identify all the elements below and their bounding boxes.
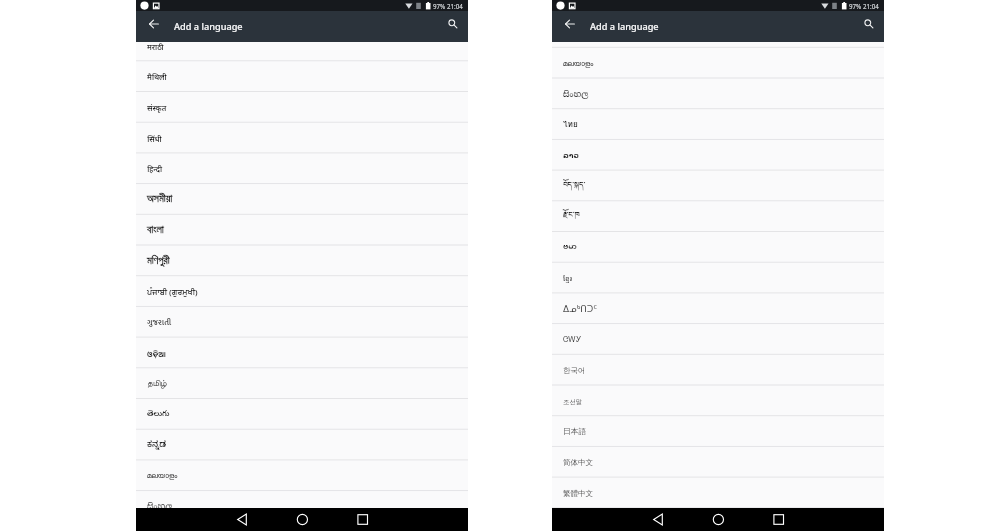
staticText: മലയാളം: [563, 60, 594, 67]
button[interactable]: ខ្មែរ: [552, 263, 884, 294]
button[interactable]: ไทย: [552, 109, 884, 140]
button[interactable]: ಕನ್ನಡ: [552, 17, 884, 48]
staticText: བོད་སྐད་: [563, 176, 586, 197]
staticText: 日本語: [563, 427, 587, 437]
button[interactable]: ᏣᎳᎩ: [552, 324, 884, 355]
staticText: ಕನ್ನಡ: [563, 27, 583, 38]
button[interactable]: Search: [443, 14, 463, 34]
staticText: தமிழ்: [147, 379, 167, 388]
staticText: རྫོང་ཁ: [563, 206, 580, 227]
button[interactable]: संस्कृत: [136, 92, 468, 123]
staticText: සිංහල: [147, 501, 173, 512]
staticText: मराठी: [147, 42, 164, 52]
button[interactable]: සිංහල: [552, 79, 884, 110]
staticText: Add a language: [174, 20, 243, 33]
staticText: മലയാളം: [147, 472, 178, 479]
staticText: ខ្មែរ: [563, 274, 573, 284]
staticText: ဗမာ: [563, 239, 577, 256]
button[interactable]: සිංහල: [136, 491, 468, 522]
button[interactable]: 繁體中文: [552, 478, 884, 509]
button[interactable]: ગુજરાતી: [136, 307, 468, 338]
button[interactable]: Navigate up: [144, 14, 164, 34]
button[interactable]: ဗမာ: [552, 232, 884, 263]
button[interactable]: ਪੰਜਾਬੀ (ਗੁਰਮੁਖੀ): [136, 276, 468, 307]
staticText: 97%: [433, 2, 446, 10]
button[interactable]: सिंधी: [136, 123, 468, 154]
staticText: 한국어: [563, 366, 586, 375]
staticText: ไทย: [563, 118, 578, 131]
button[interactable]: বাংলা: [136, 215, 468, 246]
button[interactable]: தமிழ்: [136, 368, 468, 399]
staticText: ລາວ: [563, 151, 579, 160]
staticText: සිංහල: [563, 89, 589, 100]
staticText: মণিপুরী: [147, 256, 170, 267]
button[interactable]: मराठी: [136, 31, 468, 62]
button[interactable]: മലയാളം: [136, 460, 468, 491]
staticText: অসমীয়া: [147, 194, 173, 205]
button[interactable]: 日本語: [552, 416, 884, 447]
button[interactable]: 조선말: [552, 386, 884, 417]
staticText: 繁體中文: [563, 489, 593, 498]
staticText: 조선말: [563, 398, 583, 406]
button[interactable]: 简体中文: [552, 447, 884, 478]
staticText: मैथिली: [147, 72, 167, 82]
button[interactable]: অসমীয়া: [136, 184, 468, 215]
staticText: ᏣᎳᎩ: [563, 336, 582, 344]
button[interactable]: हिन्दी: [136, 153, 468, 184]
staticText: ଓଡ଼ିଆ: [147, 349, 166, 359]
staticText: ગુજરાતી: [147, 316, 172, 329]
staticText: Add a language: [590, 20, 659, 33]
button[interactable]: মণিপুরী: [136, 246, 468, 277]
staticText: संस्कृत: [147, 103, 167, 113]
staticText: सिंधी: [147, 134, 162, 144]
staticText: বাংলা: [147, 225, 164, 236]
button[interactable]: རྫོང་ཁ: [552, 201, 884, 232]
button[interactable]: ລາວ: [552, 140, 884, 171]
staticText: ಕನ್ನಡ: [147, 440, 167, 451]
staticText: తెలుగు: [147, 409, 170, 420]
button[interactable]: ଓଡ଼ିଆ: [136, 338, 468, 369]
staticText: ਪੰਜਾਬੀ (ਗੁਰਮੁਖੀ): [147, 287, 198, 297]
button[interactable]: ಕನ್ನಡ: [136, 430, 468, 461]
button[interactable]: मैथिली: [136, 61, 468, 92]
staticText: 简体中文: [563, 458, 593, 467]
button[interactable]: ᐃᓄᒃᑎᑐᑦ: [552, 293, 884, 324]
staticText: 97%: [849, 2, 862, 10]
staticText: ᐃᓄᒃᑎᑐᑦ: [563, 304, 598, 314]
button[interactable]: മലയാളം: [552, 48, 884, 79]
button[interactable]: བོད་སྐད་: [552, 171, 884, 202]
staticText: हिन्दी: [147, 164, 163, 174]
staticText: 21:04: [863, 2, 879, 10]
staticText: 21:04: [447, 2, 463, 10]
button[interactable]: 한국어: [552, 355, 884, 386]
button[interactable]: తెలుగు: [136, 399, 468, 430]
button[interactable]: Navigate up: [560, 14, 580, 34]
button[interactable]: Search: [859, 14, 879, 34]
